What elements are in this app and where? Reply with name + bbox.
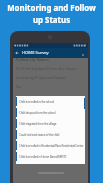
button[interactable]: Back xyxy=(13,48,88,58)
button[interactable]: Child dropout from the school xyxy=(16,107,85,118)
staticText: Child is enrolled in the school xyxy=(19,100,54,104)
staticText: HOME Survey xyxy=(22,50,49,56)
button[interactable]: Child migrated from the village xyxy=(16,118,85,129)
staticText: Child migrated from the village xyxy=(19,122,57,126)
staticText: Child is enrolled in Residential/Non-Res… xyxy=(19,144,84,148)
staticText: Learning Progress/Grade xyxy=(16,75,66,81)
staticText: Monitoring and Follow up Status xyxy=(0,3,103,25)
staticText: Is Child Update Form for Steps xyxy=(16,66,77,72)
other: Back xyxy=(15,51,19,55)
staticText: Child dropout from the school xyxy=(19,111,56,115)
button[interactable]: Child is enrolled in the school xyxy=(16,96,85,107)
staticText: No xyxy=(16,84,22,90)
staticText: Child is enrolled in Home Based/NRSTC xyxy=(19,155,67,159)
button[interactable]: Child is enrolled in Residential/Non-Res… xyxy=(16,140,85,151)
staticText: Could not track status of the child xyxy=(19,133,60,137)
button[interactable]: Child is enrolled in Home Based/NRSTC xyxy=(16,151,85,162)
staticText: Follow Up Status xyxy=(16,57,49,63)
button[interactable]: Could not track status of the child xyxy=(16,129,85,140)
